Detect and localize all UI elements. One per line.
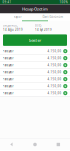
- staticText: 4.150,00: [48, 49, 62, 53]
- button[interactable]: Recents: [47, 139, 70, 150]
- staticText: Para yatır: [2, 56, 13, 60]
- staticText: Göster: [28, 37, 41, 43]
- staticText: Para yatır: [2, 70, 13, 74]
- staticText: 4.150,00: [48, 63, 62, 67]
- staticText: BAŞLANGIÇ: [3, 24, 18, 27]
- staticText: 100%: [59, 0, 67, 4]
- staticText: 4.150,00: [48, 56, 62, 60]
- button[interactable]: Para yatır: [0, 90, 70, 97]
- staticText: Rapor: [13, 15, 21, 19]
- staticText: Para yatır: [2, 77, 13, 81]
- staticText: Hesap Özetim: [22, 6, 48, 12]
- staticText: 14 Ağu 2019: [3, 28, 23, 31]
- button[interactable]: Home: [23, 139, 47, 150]
- button[interactable]: Para yatır: [0, 76, 70, 83]
- staticText: 4.150,00: [48, 70, 62, 74]
- staticText: 4.150,00: [48, 84, 62, 88]
- staticText: 14 Eyl 2019: [35, 28, 52, 31]
- button[interactable]: Para yatır: [0, 55, 70, 62]
- staticText: Para yatır: [2, 63, 13, 67]
- staticText: 09:41: [2, 0, 11, 4]
- staticText: 4.150,00: [48, 77, 62, 81]
- button[interactable]: Rapor: [0, 13, 35, 20]
- button[interactable]: Para yatır: [0, 69, 70, 76]
- button[interactable]: BAŞLANGIÇ: [3, 24, 35, 31]
- staticText: Para yatır: [2, 49, 13, 53]
- staticText: 4.150,00: [48, 91, 62, 95]
- button[interactable]: Para yatır: [0, 83, 70, 90]
- staticText: BİTİŞ: [35, 24, 41, 27]
- button[interactable]: BİTİŞ: [35, 24, 67, 31]
- staticText: Özet Görünüm: [42, 15, 62, 19]
- button[interactable]: Özet Görünüm: [35, 13, 70, 20]
- staticText: Para yatır: [2, 91, 13, 95]
- button[interactable]: Para yatır: [0, 48, 70, 55]
- button[interactable]: Back: [0, 139, 23, 150]
- button[interactable]: Para yatır: [0, 62, 70, 69]
- button[interactable]: Göster: [3, 34, 67, 46]
- staticText: Para yatır: [2, 84, 13, 88]
